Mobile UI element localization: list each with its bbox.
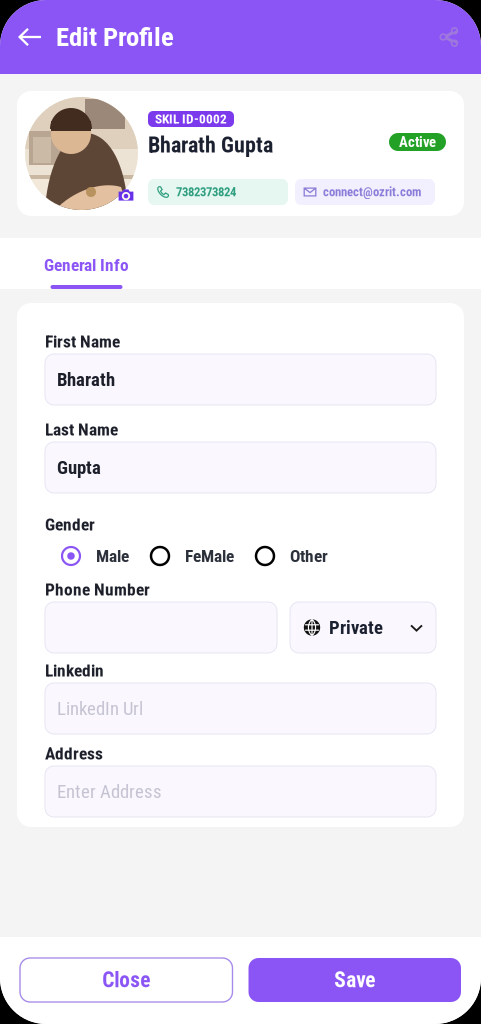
staticText: connect@ozrit.com [323,185,421,199]
button[interactable]: General Info [44,238,129,289]
staticText: Other [290,546,328,566]
staticText: Bharath Gupta [148,132,273,158]
staticText: FeMale [185,546,234,566]
staticText: Linkedin [45,660,104,681]
staticText: Close [102,967,150,992]
button[interactable]: Other [256,546,328,566]
staticText: Save [334,967,375,992]
staticText: SKIL ID-0002 [155,111,227,127]
staticText: Gender [45,514,95,535]
staticText: Bharath [57,369,115,390]
button[interactable]: Private [290,602,436,653]
staticText: Edit Profile [56,21,174,53]
staticText: 7382373824 [176,185,236,199]
staticText: First Name [45,331,120,352]
staticText: Phone Number [45,579,150,600]
staticText: LinkedIn Url [57,698,143,719]
staticText: Enter Address [57,781,162,802]
staticText: Address [45,743,103,764]
button[interactable]: LinkedIn Url [45,683,436,734]
button[interactable]: Back [0,0,56,74]
button[interactable]: Save [248,958,461,1002]
button[interactable]: Close [20,958,232,1002]
button[interactable]: Male [62,546,129,566]
button[interactable]: FeMale [151,546,234,566]
staticText: Male [96,546,129,566]
staticText: Private [329,617,383,638]
button[interactable]: Enter Address [45,766,436,817]
staticText: Active [399,133,436,151]
button[interactable]: Bharath [45,354,436,405]
button[interactable]: Share [439,0,481,74]
staticText: General Info [44,255,129,275]
button[interactable]: Gupta [45,442,436,493]
staticText: Last Name [45,419,118,440]
staticText: Gupta [57,457,101,478]
